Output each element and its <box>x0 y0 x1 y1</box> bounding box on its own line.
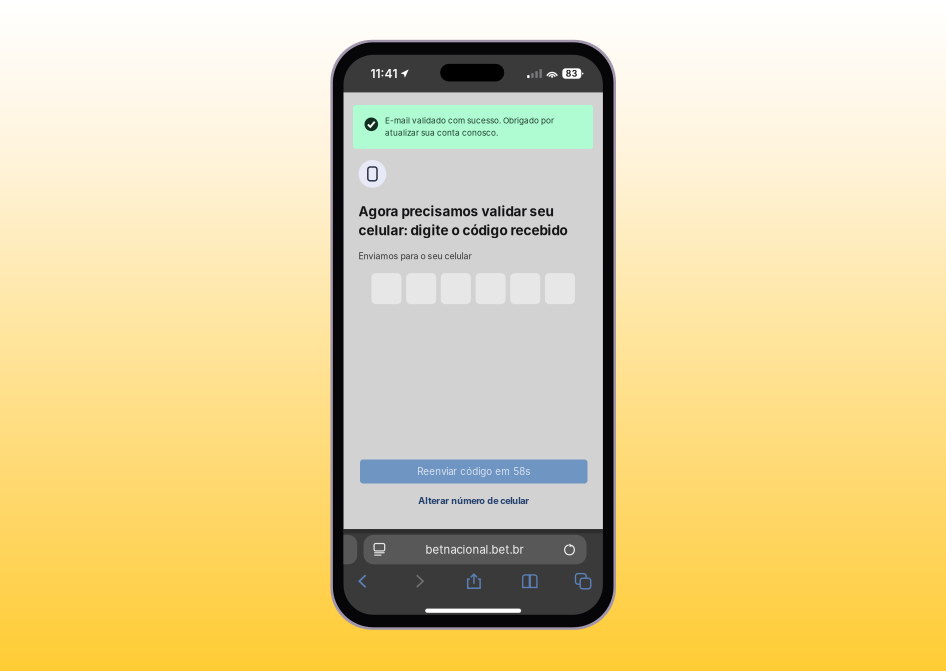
button[interactable]: Reload <box>557 538 581 562</box>
staticText: celular: digite o código recebido <box>358 222 567 238</box>
staticText: Agora precisamos validar seu <box>358 203 553 220</box>
button[interactable]: Back <box>349 568 377 595</box>
staticText: Alterar número de celular <box>418 495 529 506</box>
button[interactable]: Forward <box>406 568 434 595</box>
staticText: 83 <box>566 68 578 79</box>
staticText: 11:41 <box>370 66 397 81</box>
staticText: Enviamos para o seu celular <box>358 251 471 261</box>
staticText: E-mail validado com sucesso. Obrigado po… <box>385 115 554 125</box>
button[interactable]: Page settings <box>367 538 391 562</box>
staticText: Reenviar código em 58s <box>417 466 530 477</box>
staticText: betnacional.bet.br <box>425 543 523 556</box>
staticText: atualizar sua conta conosco. <box>385 128 498 138</box>
button[interactable]: Alterar número de celular <box>360 493 587 509</box>
button[interactable]: Reenviar código em 58s <box>360 459 587 483</box>
button[interactable]: Tabs <box>569 568 597 595</box>
button[interactable]: Share <box>460 568 488 595</box>
button[interactable]: Bookmarks <box>516 568 544 595</box>
